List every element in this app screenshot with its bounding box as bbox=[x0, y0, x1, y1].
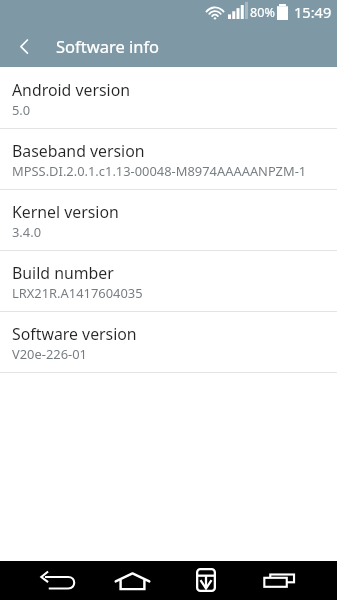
button[interactable]: Build number bbox=[0, 251, 337, 312]
staticText: Baseband version bbox=[12, 140, 145, 162]
button[interactable]: Kernel version bbox=[0, 190, 337, 251]
staticText: Android version bbox=[12, 79, 131, 101]
staticText: 5.0 bbox=[12, 101, 31, 119]
button[interactable]: Notifications bbox=[172, 561, 240, 600]
button[interactable]: Back bbox=[0, 24, 46, 67]
staticText: MPSS.DI.2.0.1.c1.13-00048-M8974AAAAANPZM… bbox=[12, 162, 307, 180]
button[interactable]: Baseband version bbox=[0, 129, 337, 190]
staticText: Kernel version bbox=[12, 201, 119, 223]
staticText: Software version bbox=[12, 323, 137, 345]
staticText: 80% bbox=[250, 4, 275, 21]
button[interactable]: Recents bbox=[246, 561, 314, 600]
button[interactable]: Android version bbox=[0, 67, 337, 129]
button[interactable]: Back bbox=[24, 561, 92, 600]
staticText: Software info bbox=[56, 35, 160, 57]
staticText: 15:49 bbox=[294, 2, 332, 22]
staticText: Build number bbox=[12, 262, 114, 284]
button[interactable]: Home bbox=[98, 561, 166, 600]
staticText: V20e-226-01 bbox=[12, 345, 87, 363]
staticText: 3.4.0 bbox=[12, 223, 42, 241]
button[interactable]: Software version bbox=[0, 312, 337, 373]
staticText: LRX21R.A1417604035 bbox=[12, 284, 143, 302]
